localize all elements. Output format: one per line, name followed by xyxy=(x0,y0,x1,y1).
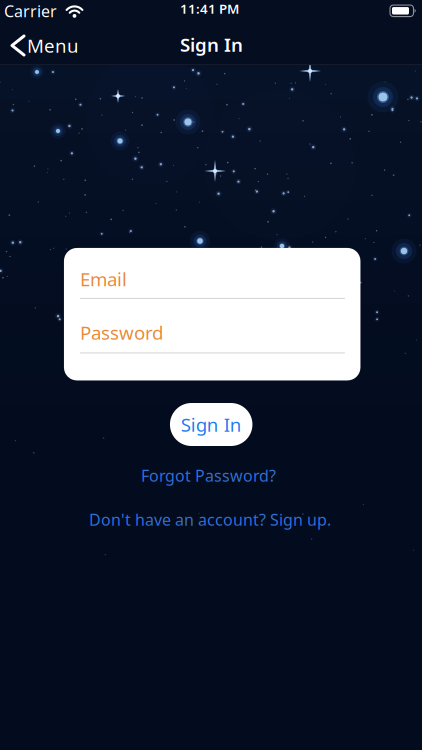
staticText: Sign In xyxy=(181,412,242,437)
staticText: Forgot Password? xyxy=(141,465,276,486)
staticText: Don't have an account? Sign up. xyxy=(89,509,331,530)
staticText: 11:41 PM xyxy=(180,0,239,17)
staticText: Carrier xyxy=(4,0,57,22)
staticText: Menu xyxy=(27,33,79,58)
button[interactable]: Back to Menu xyxy=(0,25,76,61)
staticText: Password xyxy=(80,320,163,345)
staticText: Email xyxy=(80,267,127,291)
button[interactable]: Forgot Password? xyxy=(141,465,276,486)
button[interactable]: Password xyxy=(64,306,344,360)
button[interactable]: Email xyxy=(64,248,344,302)
button[interactable]: Sign In xyxy=(170,403,252,446)
button[interactable]: Don't have an account? Sign up. xyxy=(89,509,331,530)
staticText: Sign In xyxy=(180,32,243,57)
